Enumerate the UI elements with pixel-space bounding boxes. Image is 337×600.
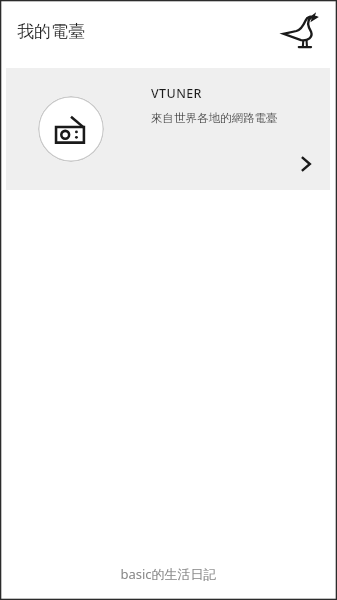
staticText: VTUNER [151, 85, 202, 102]
button[interactable]: Open VTUNER [292, 150, 320, 178]
staticText: 我的電臺 [17, 21, 85, 42]
button[interactable]: VTUNER [6, 68, 330, 190]
button[interactable]: Logo [275, 5, 327, 57]
staticText: 來自世界各地的網路電臺 [151, 111, 278, 125]
staticText: basic的生活日記 [120, 565, 217, 583]
